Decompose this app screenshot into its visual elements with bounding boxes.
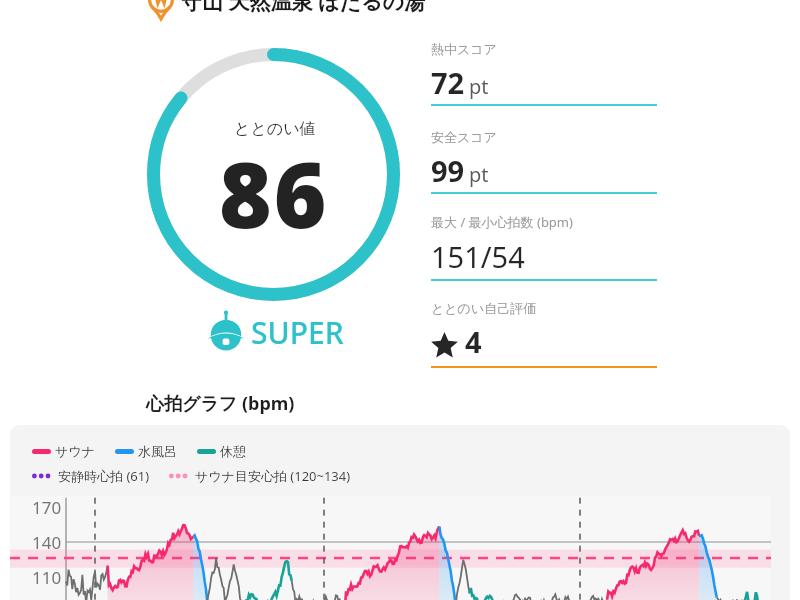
staticText: 水風呂	[138, 443, 177, 459]
staticText: 熱中スコア	[431, 41, 497, 57]
staticText: 151/54	[431, 237, 525, 276]
staticText: 170	[32, 496, 62, 519]
staticText: 140	[32, 531, 62, 554]
staticText: ととのい自己評価	[431, 300, 537, 316]
staticText: ととのい値	[234, 119, 316, 139]
staticText: SUPER	[251, 312, 344, 353]
staticText: 守山 天然温泉 ほたるの湯	[181, 0, 425, 16]
button[interactable]: Location	[146, 0, 425, 16]
button[interactable]: ととのい自己評価	[431, 300, 657, 366]
staticText: 安静時心拍 (61)	[58, 467, 150, 485]
staticText: サウナ目安心拍 (120~134)	[195, 467, 351, 485]
staticText: 110	[32, 566, 62, 589]
staticText: サウナ	[55, 443, 95, 459]
other: Location	[146, 0, 176, 20]
staticText: 86	[219, 132, 329, 255]
staticText: 72	[431, 63, 465, 102]
staticText: pt	[469, 73, 489, 100]
staticText: 4	[465, 322, 482, 361]
staticText: 安全スコア	[431, 129, 497, 145]
staticText: 99	[431, 151, 465, 190]
button[interactable]: 安全スコア	[431, 129, 657, 195]
button[interactable]: SUPER	[146, 312, 404, 353]
button[interactable]: 熱中スコア	[431, 41, 657, 107]
staticText: 心拍グラフ (bpm)	[146, 391, 295, 416]
staticText: pt	[469, 161, 489, 188]
staticText: 休憩	[220, 443, 246, 459]
staticText: 最大 / 最小心拍数 (bpm)	[431, 213, 573, 231]
button[interactable]: 最大 / 最小心拍数 (bpm)	[431, 213, 657, 279]
